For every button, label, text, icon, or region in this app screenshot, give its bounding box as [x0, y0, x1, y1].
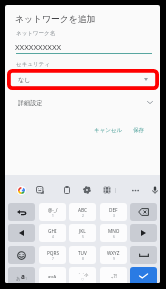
staticText: WXYZ — [107, 250, 120, 256]
button[interactable]: Undo — [8, 203, 35, 221]
button[interactable]: Switch input mode — [8, 267, 35, 283]
button[interactable]: なし — [7, 69, 159, 90]
button[interactable]: 詳細設定 — [7, 95, 158, 113]
staticText: 保存 — [133, 127, 144, 134]
staticText: 2 — [82, 214, 84, 218]
button[interactable]: Stickers — [35, 185, 45, 195]
staticText: 4 — [52, 235, 54, 239]
button[interactable]: TUV 8 — [69, 246, 96, 264]
staticText: .,?! — [111, 273, 117, 279]
button[interactable]: More options — [130, 185, 140, 195]
staticText: 7 — [52, 257, 54, 261]
staticText: @-_/ — [48, 207, 58, 213]
button[interactable]: Enter — [130, 267, 157, 283]
staticText: 1 — [25, 275, 28, 281]
staticText: a⇔A — [48, 274, 57, 279]
button[interactable]: JKL 5 — [69, 224, 96, 242]
staticText: 5 — [82, 235, 84, 239]
staticText: DEF — [109, 207, 118, 213]
staticText: 8 — [82, 257, 84, 261]
staticText: XXXXXXXXXX — [15, 42, 62, 53]
button[interactable]: Cursor left — [8, 224, 35, 242]
button[interactable]: ABC 2 — [69, 203, 96, 221]
button[interactable]: キャンセル — [92, 123, 125, 137]
staticText: 1 — [52, 214, 54, 218]
staticText: 6 — [113, 235, 115, 239]
button[interactable]: GHI 4 — [39, 224, 66, 242]
staticText: ネットワーク名 — [16, 30, 56, 37]
button[interactable]: Punctuation — [100, 267, 127, 283]
staticText: 9 — [113, 257, 115, 261]
button[interactable]: Translate — [102, 185, 112, 195]
staticText: セキュリティ — [16, 61, 50, 68]
staticText: GHI — [48, 228, 57, 234]
staticText: PQRS — [47, 250, 59, 256]
staticText: 詳細設定 — [18, 99, 43, 107]
button[interactable]: Cursor right — [130, 224, 157, 242]
staticText: ネットワークを追加 — [15, 14, 96, 25]
button[interactable]: Voice input — [150, 185, 160, 195]
button[interactable]: Google — [16, 185, 26, 195]
staticText: TUV — [78, 250, 87, 256]
staticText: キャンセル — [94, 127, 123, 134]
staticText: JKL — [79, 228, 86, 234]
button[interactable]: Voiced sound marks — [69, 267, 96, 283]
button[interactable]: WXYZ 9 — [100, 246, 127, 264]
staticText: MNO — [108, 228, 120, 234]
staticText: あ — [16, 276, 21, 281]
staticText: 〇 — [81, 277, 84, 281]
staticText: ABC — [78, 207, 88, 213]
button[interactable]: PQRS 7 — [39, 246, 66, 264]
button[interactable]: Settings — [82, 185, 92, 195]
button[interactable]: at dash underscore slash 1 — [39, 203, 66, 221]
staticText: 3 — [113, 214, 115, 218]
staticText: ゛゜小 — [76, 272, 89, 277]
button[interactable]: 保存 — [131, 123, 149, 137]
button[interactable]: MNO 6 — [100, 224, 127, 242]
staticText: なし — [18, 76, 31, 84]
button[interactable]: Clipboard — [62, 185, 72, 195]
button[interactable]: Space — [130, 246, 157, 264]
button[interactable]: Backspace — [130, 203, 157, 221]
staticText: a — [21, 272, 25, 281]
button[interactable]: DEF 3 — [100, 203, 127, 221]
button[interactable]: Emoji — [8, 246, 35, 264]
button[interactable]: Shift case — [39, 267, 66, 283]
